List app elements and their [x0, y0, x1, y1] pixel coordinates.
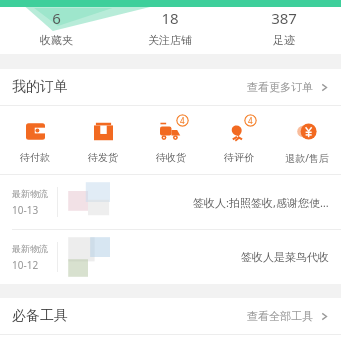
staticText: 10-12: [12, 258, 39, 272]
button[interactable]: 6: [0, 8, 113, 47]
staticText: 我的订单: [12, 78, 68, 96]
staticText: 待付款: [20, 151, 50, 164]
button[interactable]: 退款/售后: [273, 116, 341, 165]
button[interactable]: 查看更多订单: [247, 80, 329, 94]
staticText: 待收货: [156, 151, 186, 164]
staticText: 6: [52, 8, 61, 28]
staticText: 签收人:拍照签收,感谢您使…: [193, 195, 329, 210]
staticText: 收藏夹: [40, 33, 73, 47]
staticText: 4: [248, 115, 253, 126]
button[interactable]: 387: [227, 8, 341, 47]
staticText: 关注店铺: [148, 33, 192, 47]
button[interactable]: 待发货: [69, 116, 137, 164]
staticText: 足迹: [273, 33, 295, 47]
button[interactable]: 查看全部工具: [247, 309, 329, 323]
staticText: 最新物流: [12, 188, 48, 199]
staticText: 退款/售后: [285, 151, 329, 165]
staticText: 查看全部工具: [247, 309, 313, 323]
button[interactable]: 最新物流: [0, 230, 341, 284]
button[interactable]: 4: [137, 116, 205, 164]
button[interactable]: 18: [113, 8, 227, 47]
staticText: 最新物流: [12, 243, 48, 254]
staticText: 387: [271, 8, 297, 28]
button[interactable]: 待付款: [0, 116, 69, 164]
staticText: 4: [180, 115, 185, 126]
button[interactable]: 最新物流: [0, 175, 341, 229]
staticText: 签收人是菜鸟代收: [241, 250, 329, 264]
staticText: 必备工具: [12, 307, 68, 325]
staticText: 10-13: [12, 203, 39, 217]
staticText: 18: [161, 8, 179, 28]
staticText: 待评价: [224, 151, 254, 164]
button[interactable]: 4: [205, 116, 273, 164]
staticText: 查看更多订单: [247, 80, 313, 94]
staticText: 待发货: [88, 151, 118, 164]
